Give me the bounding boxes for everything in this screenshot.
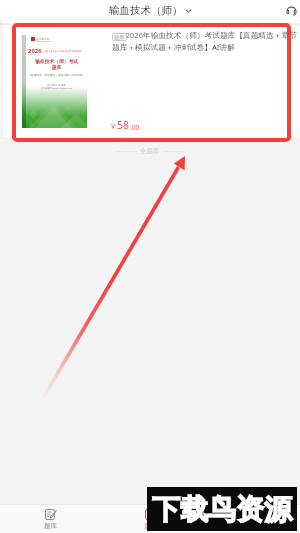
staticText: 下载鸟资源 bbox=[152, 492, 292, 527]
staticText: 【真题精选＋章节题库＋模拟试题＋冲刺试卷】 bbox=[26, 73, 87, 76]
staticText: 输血技术（师）考试 题库 bbox=[26, 58, 87, 70]
staticText: 58 bbox=[117, 118, 130, 132]
staticText: ¥ bbox=[111, 122, 116, 132]
staticText: 2026 bbox=[28, 47, 42, 55]
button[interactable]: Customer service bbox=[285, 4, 298, 17]
staticText: 圣才电子书 bbox=[36, 37, 50, 40]
staticText: 圣才电子书 编著 bbox=[26, 83, 87, 87]
staticText: 全题库 bbox=[140, 147, 160, 155]
button[interactable]: 题库 bbox=[0, 505, 100, 533]
staticText: 2026年输血技术（师）考试题库【真题精选＋章节题库＋模拟试题＋冲刺试卷】AI讲… bbox=[112, 30, 300, 52]
button[interactable]: 我的 bbox=[200, 505, 300, 533]
staticText: 输血技术（师） bbox=[109, 4, 183, 17]
button[interactable] bbox=[3, 20, 300, 137]
staticText: 选课 bbox=[144, 522, 157, 530]
staticText: 题库 bbox=[44, 522, 57, 530]
button[interactable]: 选课 bbox=[100, 505, 200, 533]
staticText: 全国卫生专业技术资格考试用书配套题库 bbox=[44, 50, 82, 53]
staticText: 圣才考研网 www.100exam.com bbox=[26, 87, 87, 90]
staticText: .00 bbox=[130, 123, 140, 132]
button[interactable]: 输血技术（师） bbox=[105, 2, 196, 19]
staticText: 我的 bbox=[244, 522, 257, 530]
staticText: 题库 bbox=[114, 34, 125, 41]
staticText: www.100exam.com bbox=[36, 40, 51, 42]
